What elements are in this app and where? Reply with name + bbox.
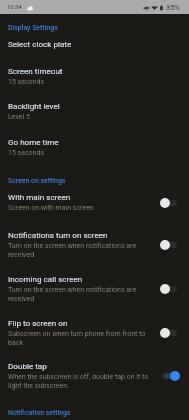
button[interactable]: Incoming call screen — [0, 259, 189, 303]
staticText: Display Settings — [8, 24, 58, 32]
button[interactable]: Go home time — [0, 121, 189, 157]
staticText: Level 5 — [8, 113, 30, 121]
button[interactable]: With main screen — [0, 185, 189, 212]
staticText: 15 seconds — [8, 149, 45, 157]
staticText: Notification settings — [8, 409, 71, 417]
staticText: Turn on the screen when notifications ar… — [8, 242, 154, 259]
staticText: Subscreen on when turn phone from front … — [8, 330, 154, 347]
button[interactable]: Toggle off — [160, 239, 180, 250]
button[interactable]: Notification settings — [0, 390, 189, 417]
staticText: Screen on settings — [8, 177, 66, 185]
button[interactable]: Display Settings — [0, 14, 189, 32]
staticText: 15 seconds — [8, 78, 45, 86]
button[interactable]: Double tap — [0, 347, 189, 390]
staticText: Incoming call screen — [8, 274, 83, 283]
button[interactable]: Toggle off — [160, 197, 180, 208]
button[interactable]: Toggle off — [160, 283, 180, 294]
staticText: With main screen — [8, 192, 71, 201]
staticText: Select clock plate — [8, 39, 72, 48]
staticText: Flip to screen on — [8, 318, 68, 327]
button[interactable]: Select clock plate — [0, 32, 189, 48]
staticText: Backlight level — [8, 101, 60, 110]
staticText: Notifications turn on screen — [8, 230, 108, 239]
staticText: 10:34 — [7, 4, 22, 11]
button[interactable]: Flip to screen on — [0, 303, 189, 347]
staticText: When the subscreen is off, double tap on… — [8, 373, 154, 390]
staticText: Screen on with main screen — [8, 204, 94, 212]
button[interactable]: Backlight level — [0, 86, 189, 121]
staticText: Screen timeout — [8, 66, 63, 75]
button[interactable]: Screen timeout — [0, 48, 189, 86]
button[interactable]: Notifications turn on screen — [0, 212, 189, 259]
staticText: 35% — [166, 3, 180, 12]
staticText: Go home time — [8, 137, 59, 146]
staticText: Turn on the screen when notifications ar… — [8, 286, 154, 303]
button[interactable]: Toggle on — [160, 370, 180, 381]
button[interactable]: Screen on settings — [0, 157, 189, 185]
button[interactable]: Toggle off — [160, 327, 180, 338]
staticText: Double tap — [8, 361, 47, 370]
